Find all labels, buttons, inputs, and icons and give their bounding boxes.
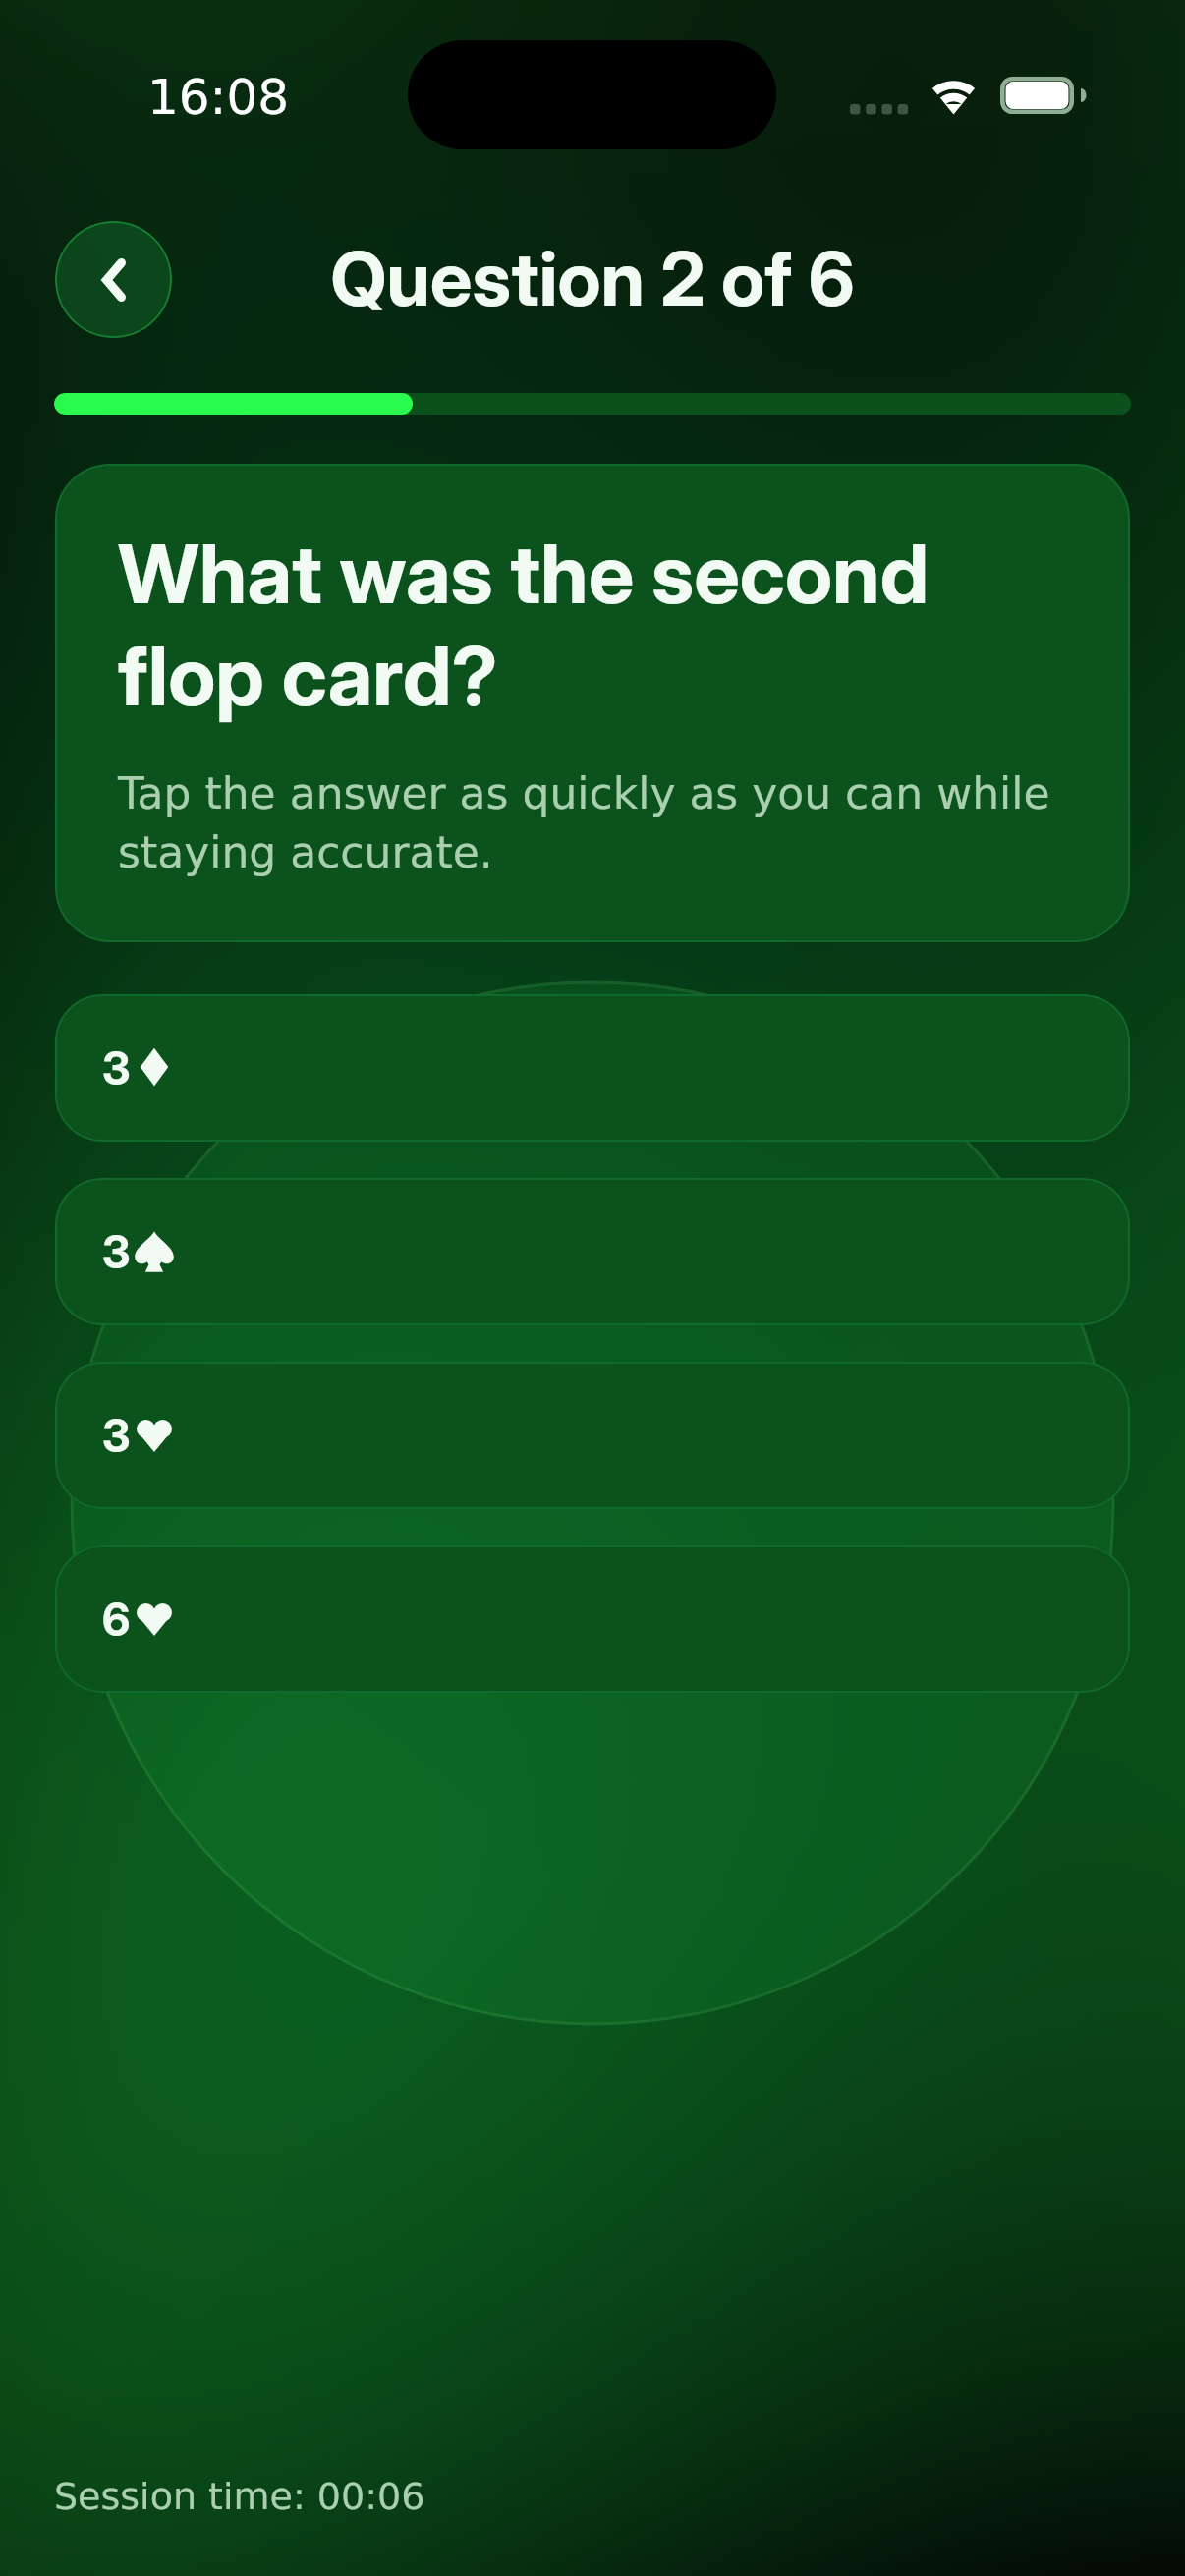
button[interactable]: 6 hearts [55,1545,1130,1693]
button[interactable]: 3 hearts [55,1362,1130,1509]
button[interactable]: 3 diamonds [55,994,1130,1142]
staticText: 6 [102,1592,131,1647]
staticText: 3 [102,1408,131,1463]
button[interactable]: 3 spades [55,1178,1130,1325]
staticText: Tap the answer as quickly as you can whi… [118,768,1067,877]
staticText: 3 [102,1224,131,1279]
staticText: 3 [102,1040,131,1095]
staticText: 16:08 [147,69,290,126]
button[interactable]: Back [55,221,172,338]
staticText: What was the second flop card? [118,525,1067,725]
staticText: Question 2 of 6 [0,233,1185,323]
staticText: Session time: 00:06 [54,2475,425,2518]
